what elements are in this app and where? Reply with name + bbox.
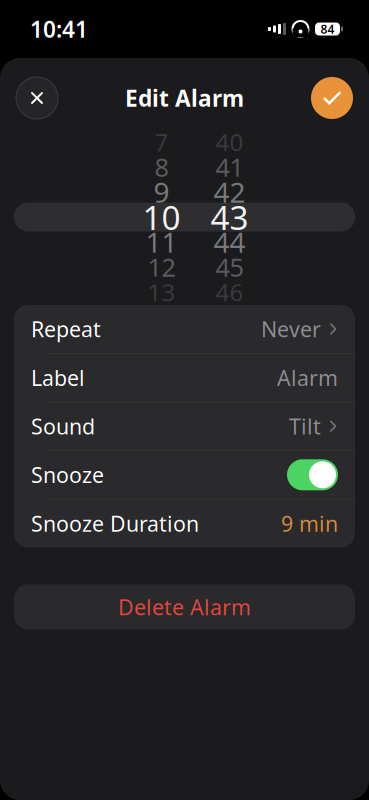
button[interactable]: Snooze Duration — [14, 499, 355, 547]
button[interactable]: Snooze — [14, 451, 355, 499]
button[interactable]: Close — [16, 77, 58, 119]
staticText: 84 — [320, 21, 334, 37]
staticText: Edit Alarm — [125, 83, 244, 113]
staticText: Tilt — [289, 412, 321, 440]
staticText: Never — [261, 315, 321, 343]
staticText: 7 — [154, 126, 168, 158]
staticText: 42 — [213, 173, 245, 211]
staticText: Repeat — [31, 315, 101, 343]
staticText: 10 — [142, 195, 180, 239]
staticText: 12 — [147, 250, 175, 284]
staticText: Label — [31, 363, 85, 392]
staticText: Delete Alarm — [118, 593, 251, 621]
button[interactable]: Save — [311, 77, 353, 119]
staticText: 9 — [153, 173, 169, 211]
button[interactable]: Repeat — [14, 305, 355, 353]
button[interactable]: Label — [14, 354, 355, 402]
staticText: 8 — [154, 150, 168, 184]
staticText: Sound — [31, 412, 95, 440]
staticText: 9 min — [281, 509, 338, 537]
staticText: 46 — [215, 276, 243, 308]
staticText: 44 — [213, 223, 245, 261]
staticText: Alarm — [277, 363, 338, 392]
button[interactable]: Sound — [14, 402, 355, 450]
button[interactable]: Delete Alarm — [14, 584, 355, 629]
staticText: Snooze Duration — [31, 509, 199, 537]
staticText: Snooze — [31, 461, 104, 489]
staticText: 10:41 — [30, 14, 88, 44]
staticText: 45 — [215, 250, 243, 284]
staticText: 11 — [145, 223, 177, 261]
staticText: 40 — [215, 126, 243, 158]
staticText: 43 — [210, 195, 248, 239]
staticText: 41 — [215, 150, 243, 184]
staticText: 13 — [147, 276, 175, 308]
